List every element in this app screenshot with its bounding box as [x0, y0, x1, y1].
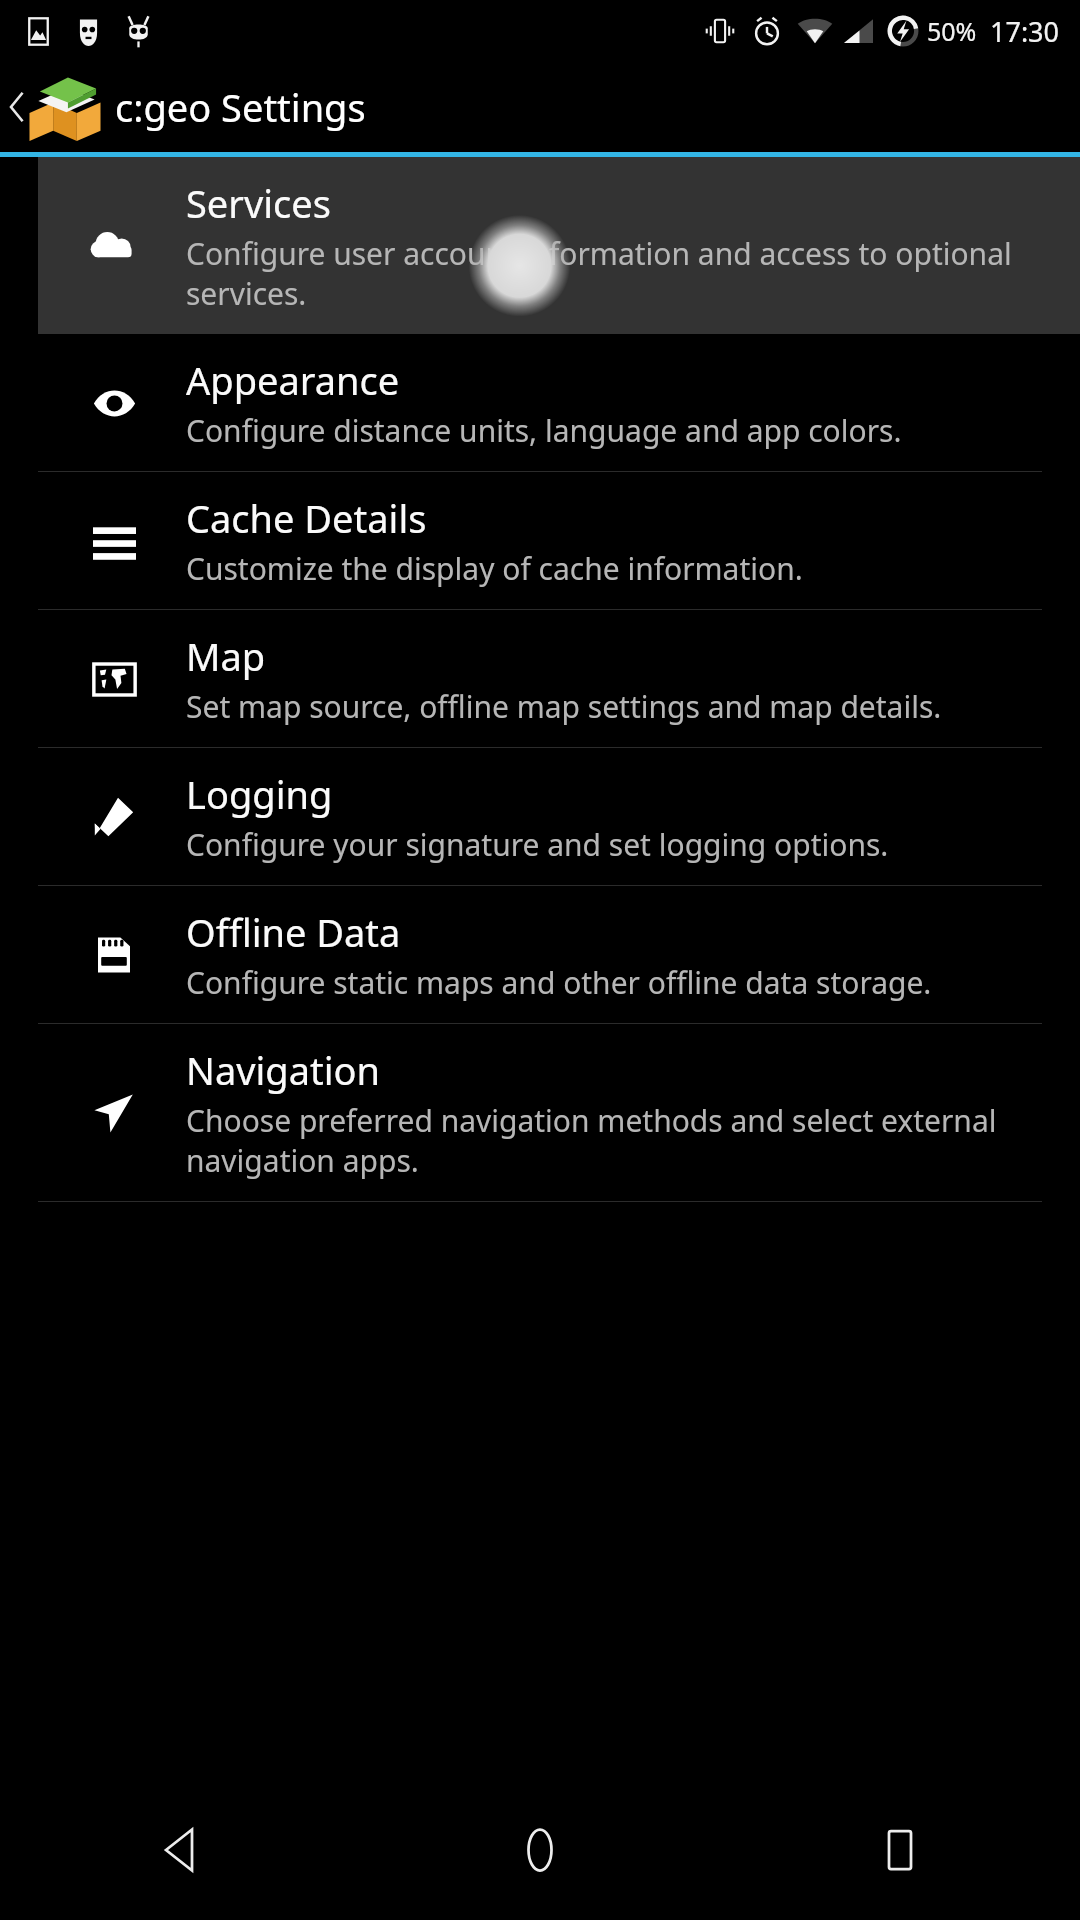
staticText: Offline Data [186, 906, 401, 958]
button[interactable]: Back [0, 1780, 360, 1920]
button[interactable]: Services [38, 157, 1080, 334]
staticText: Map [186, 630, 266, 682]
button[interactable]: Appearance [0, 334, 1080, 472]
staticText: 50% [927, 14, 977, 48]
staticText: Cache Details [186, 492, 427, 544]
button[interactable]: Cache Details [0, 472, 1080, 610]
button[interactable]: Map [0, 610, 1080, 748]
staticText: Appearance [186, 354, 400, 406]
staticText: Logging [186, 768, 333, 820]
staticText: Configure your signature and set logging… [186, 824, 889, 865]
staticText: Choose preferred navigation methods and … [186, 1100, 1048, 1181]
button[interactable]: Logging [0, 748, 1080, 886]
staticText: c:geo Settings [115, 81, 366, 133]
button[interactable]: Offline Data [0, 886, 1080, 1024]
button[interactable]: Recent apps [720, 1780, 1080, 1920]
staticText: Configure distance units, language and a… [186, 410, 902, 451]
staticText: Configure user account information and a… [186, 233, 1048, 314]
button[interactable]: Navigate up [0, 62, 1080, 152]
staticText: Customize the display of cache informati… [186, 548, 803, 589]
button[interactable]: Navigation [0, 1024, 1080, 1202]
staticText: Services [186, 177, 331, 229]
staticText: Configure static maps and other offline … [186, 962, 932, 1003]
staticText: Set map source, offline map settings and… [186, 686, 942, 727]
staticText: 17:30 [990, 13, 1060, 50]
button[interactable]: Home [360, 1780, 720, 1920]
staticText: Navigation [186, 1044, 380, 1096]
